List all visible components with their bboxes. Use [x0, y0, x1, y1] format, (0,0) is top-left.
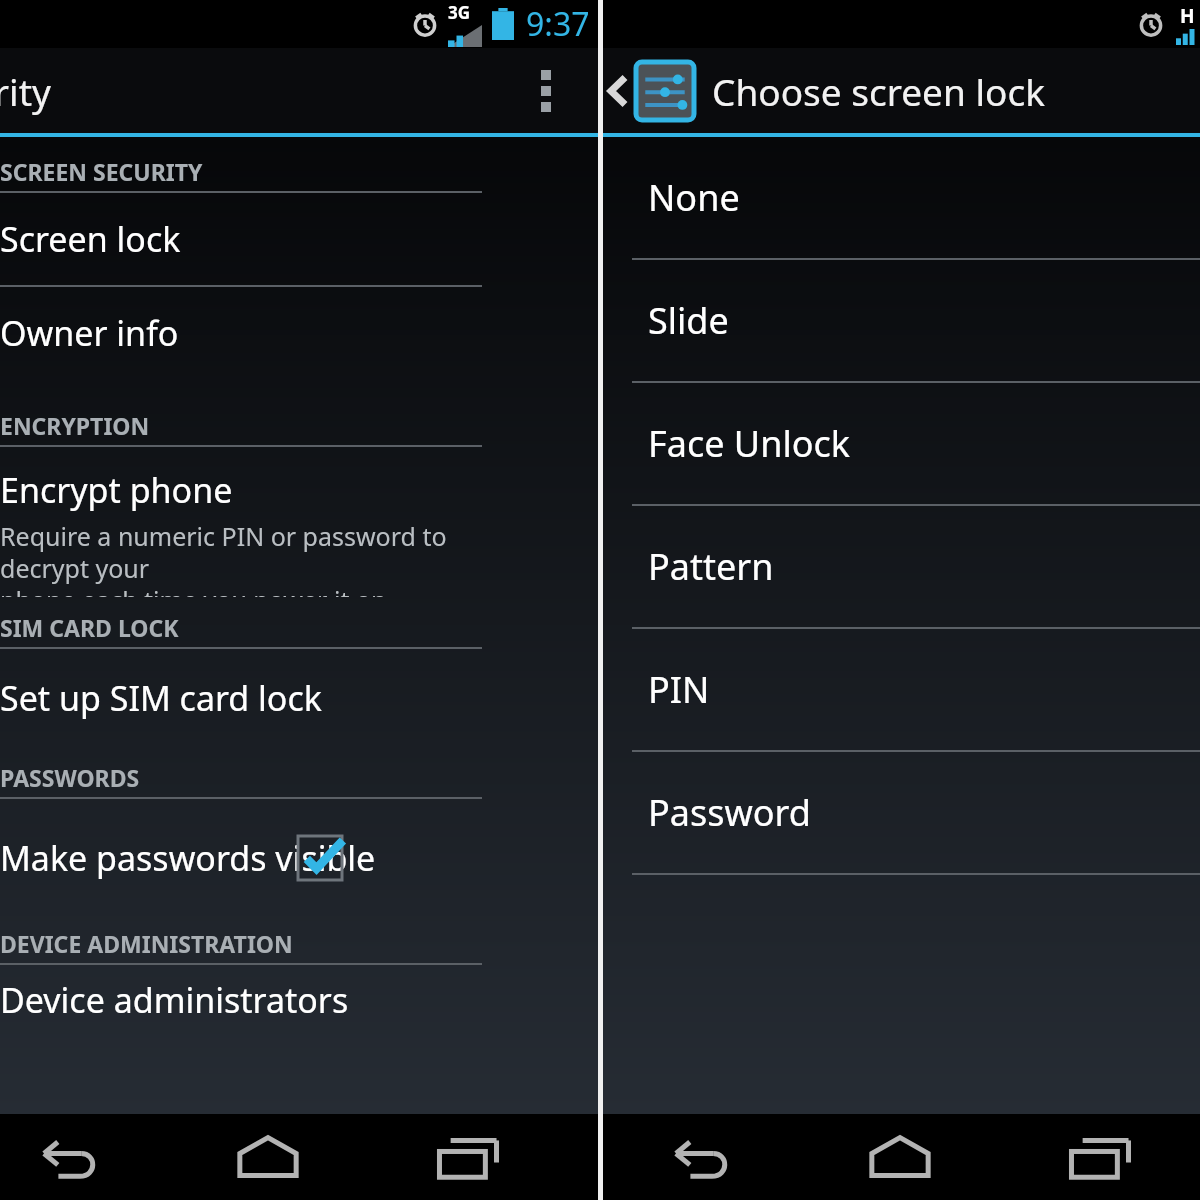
button[interactable]: Face Unlock	[600, 383, 1200, 504]
staticText: Encrypt phone	[0, 467, 233, 513]
staticText: Security	[0, 66, 51, 116]
staticText: Slide	[648, 296, 729, 345]
staticText: PASSWORDS	[0, 762, 140, 793]
staticText: Make passwords visible	[0, 835, 376, 881]
button[interactable]: Set up SIM card lock	[0, 649, 512, 747]
button[interactable]: Back	[600, 1114, 800, 1200]
button[interactable]: Home	[168, 1114, 368, 1200]
button[interactable]: Slide	[600, 260, 1200, 381]
staticText: Password	[648, 788, 811, 837]
staticText: Choose screen lock	[712, 66, 1045, 116]
staticText: H	[1180, 3, 1195, 29]
button[interactable]: Recent apps	[1000, 1114, 1200, 1200]
button[interactable]: Pattern	[600, 506, 1200, 627]
staticText: Face Unlock	[648, 419, 850, 468]
staticText: Owner info	[0, 310, 179, 356]
button[interactable]: More options	[522, 67, 570, 115]
staticText: ENCRYPTION	[0, 410, 150, 441]
staticText: None	[648, 173, 740, 222]
staticText: 3G	[448, 1, 471, 24]
staticText: SCREEN SECURITY	[0, 156, 203, 187]
button[interactable]: Screen lock	[0, 193, 512, 285]
button[interactable]: Owner info	[0, 287, 512, 379]
staticText: Pattern	[648, 542, 774, 591]
staticText: PIN	[648, 665, 710, 714]
staticText: Device administrators	[0, 977, 349, 1023]
button[interactable]: Password	[600, 752, 1200, 873]
button[interactable]: Device administrators	[0, 965, 512, 1035]
button[interactable]: Home	[800, 1114, 1000, 1200]
button[interactable]: None	[600, 137, 1200, 258]
button[interactable]: Back	[0, 1114, 168, 1200]
staticText: DEVICE ADMINISTRATION	[0, 928, 293, 959]
button[interactable]: Navigate up	[600, 62, 698, 120]
staticText: Screen lock	[0, 216, 181, 262]
staticText: Require a numeric PIN or password to dec…	[0, 519, 512, 597]
staticText: SIM CARD LOCK	[0, 612, 179, 643]
button[interactable]: Encrypt phone	[0, 447, 512, 597]
button[interactable]: Recent apps	[368, 1114, 568, 1200]
button[interactable]: PIN	[600, 629, 1200, 750]
staticText: 9:37	[526, 2, 590, 46]
button[interactable]: Make passwords visible	[0, 799, 512, 917]
staticText: Set up SIM card lock	[0, 675, 322, 721]
